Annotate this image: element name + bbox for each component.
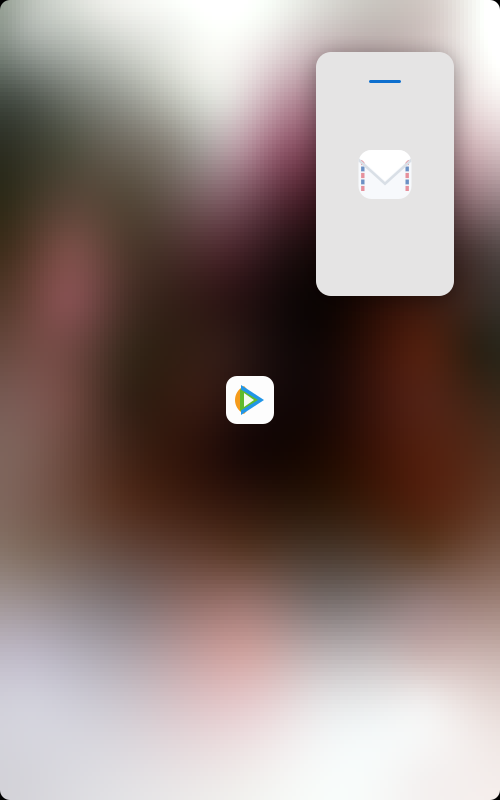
button[interactable]: Tencent Video <box>226 376 274 424</box>
button[interactable]: Mail <box>316 52 454 296</box>
